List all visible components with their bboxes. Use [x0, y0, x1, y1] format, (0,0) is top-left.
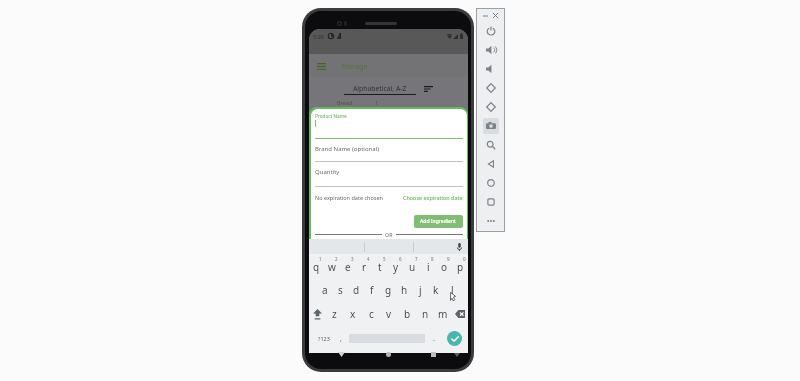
button[interactable]: Home [382, 351, 395, 358]
button[interactable]: y [388, 254, 404, 278]
staticText: , [340, 334, 342, 344]
staticText: 7 [415, 256, 418, 262]
staticText: o [441, 260, 448, 274]
staticText: l [451, 283, 454, 297]
button[interactable]: , [335, 326, 347, 353]
staticText: f [370, 283, 374, 297]
staticText: Quantity [315, 168, 340, 176]
button[interactable]: Hide keyboard [450, 351, 463, 358]
staticText: No expiration date chosen [315, 194, 383, 201]
button[interactable]: More options [477, 211, 504, 230]
staticText: . [433, 334, 435, 344]
staticText: q [313, 260, 320, 274]
staticText: p [457, 260, 464, 274]
staticText: k [433, 283, 439, 297]
staticText: 3 [351, 256, 354, 262]
staticText: d [353, 283, 360, 297]
button[interactable]: j [412, 278, 428, 302]
button[interactable]: Enter [447, 331, 462, 346]
staticText: 0 [463, 256, 466, 262]
button[interactable]: Space [347, 326, 427, 353]
button[interactable]: d [348, 278, 364, 302]
staticText: 5:28 [313, 33, 324, 40]
staticText: c [369, 307, 374, 321]
staticText: 1 [319, 256, 322, 262]
staticText: r [362, 260, 367, 274]
button[interactable]: v [380, 302, 398, 326]
button[interactable]: . [427, 326, 441, 353]
staticText: 8 [431, 256, 434, 262]
button[interactable]: Minimize [481, 11, 490, 20]
button[interactable]: g [380, 278, 396, 302]
staticText: s [338, 283, 343, 297]
button[interactable]: Power [477, 21, 504, 40]
button[interactable]: Recent apps [427, 351, 440, 358]
button[interactable]: Close [491, 11, 500, 20]
button[interactable]: l [444, 278, 460, 302]
button[interactable]: z [325, 302, 344, 326]
staticText: Brand Name (optional) [315, 145, 379, 153]
staticText: 5 [383, 256, 386, 262]
button[interactable]: Volume up [477, 40, 504, 59]
staticText: Product Name [315, 113, 347, 119]
button[interactable]: f [364, 278, 380, 302]
button[interactable]: Open navigation menu [313, 58, 329, 74]
button[interactable]: Back [477, 154, 504, 173]
button[interactable]: s [332, 278, 348, 302]
staticText: 4 [367, 256, 370, 262]
staticText: i [427, 260, 430, 274]
button[interactable]: i [420, 254, 436, 278]
staticText: y [393, 260, 399, 274]
button[interactable]: o [436, 254, 452, 278]
button[interactable]: Zoom [477, 135, 504, 154]
button[interactable]: Voice input [454, 241, 465, 252]
button[interactable]: x [344, 302, 362, 326]
staticText: w [328, 260, 336, 274]
button[interactable]: n [416, 302, 434, 326]
staticText: m [438, 307, 448, 321]
staticText: h [401, 283, 408, 297]
staticText: v [386, 307, 392, 321]
staticText: 6 [399, 256, 402, 262]
staticText: Storage [341, 61, 368, 71]
button[interactable]: Home [477, 173, 504, 192]
button[interactable]: c [362, 302, 380, 326]
staticText: j [419, 283, 422, 297]
staticText: b [404, 307, 411, 321]
staticText: ?123 [318, 335, 330, 342]
staticText: e [345, 260, 351, 274]
button[interactable]: m [434, 302, 452, 326]
button[interactable]: Back [335, 351, 348, 358]
button[interactable]: a [317, 278, 332, 302]
button[interactable]: b [398, 302, 416, 326]
button[interactable]: e [340, 254, 356, 278]
button[interactable]: q [309, 254, 324, 278]
staticText: u [409, 260, 416, 274]
staticText: t [378, 260, 382, 274]
staticText: Alphabetical, A-Z [353, 84, 407, 93]
button[interactable]: ?123 [313, 326, 335, 353]
staticText: x [350, 307, 356, 321]
button[interactable]: Recent apps [477, 192, 504, 211]
button[interactable]: h [396, 278, 412, 302]
button[interactable]: u [404, 254, 420, 278]
staticText: Add Ingredient [420, 218, 457, 225]
button[interactable]: r [356, 254, 372, 278]
button[interactable]: p [452, 254, 468, 278]
staticText: 2 [335, 256, 338, 262]
button[interactable]: Rotate right [477, 97, 504, 116]
staticText: Bread [337, 99, 353, 106]
button[interactable]: k [428, 278, 444, 302]
button[interactable]: Add Ingredient [414, 215, 463, 228]
button[interactable]: Backspace [452, 302, 468, 326]
button[interactable]: Choose expiration date [403, 194, 463, 201]
button[interactable]: Take screenshot [477, 116, 504, 135]
button[interactable]: Volume down [477, 59, 504, 78]
button[interactable]: Shift [309, 302, 325, 326]
button[interactable]: Rotate left [477, 78, 504, 97]
button[interactable]: Alphabetical, A-Z [344, 84, 433, 95]
staticText: 9 [447, 256, 450, 262]
button[interactable]: t [372, 254, 388, 278]
button[interactable]: w [324, 254, 340, 278]
staticText: a [322, 283, 328, 297]
